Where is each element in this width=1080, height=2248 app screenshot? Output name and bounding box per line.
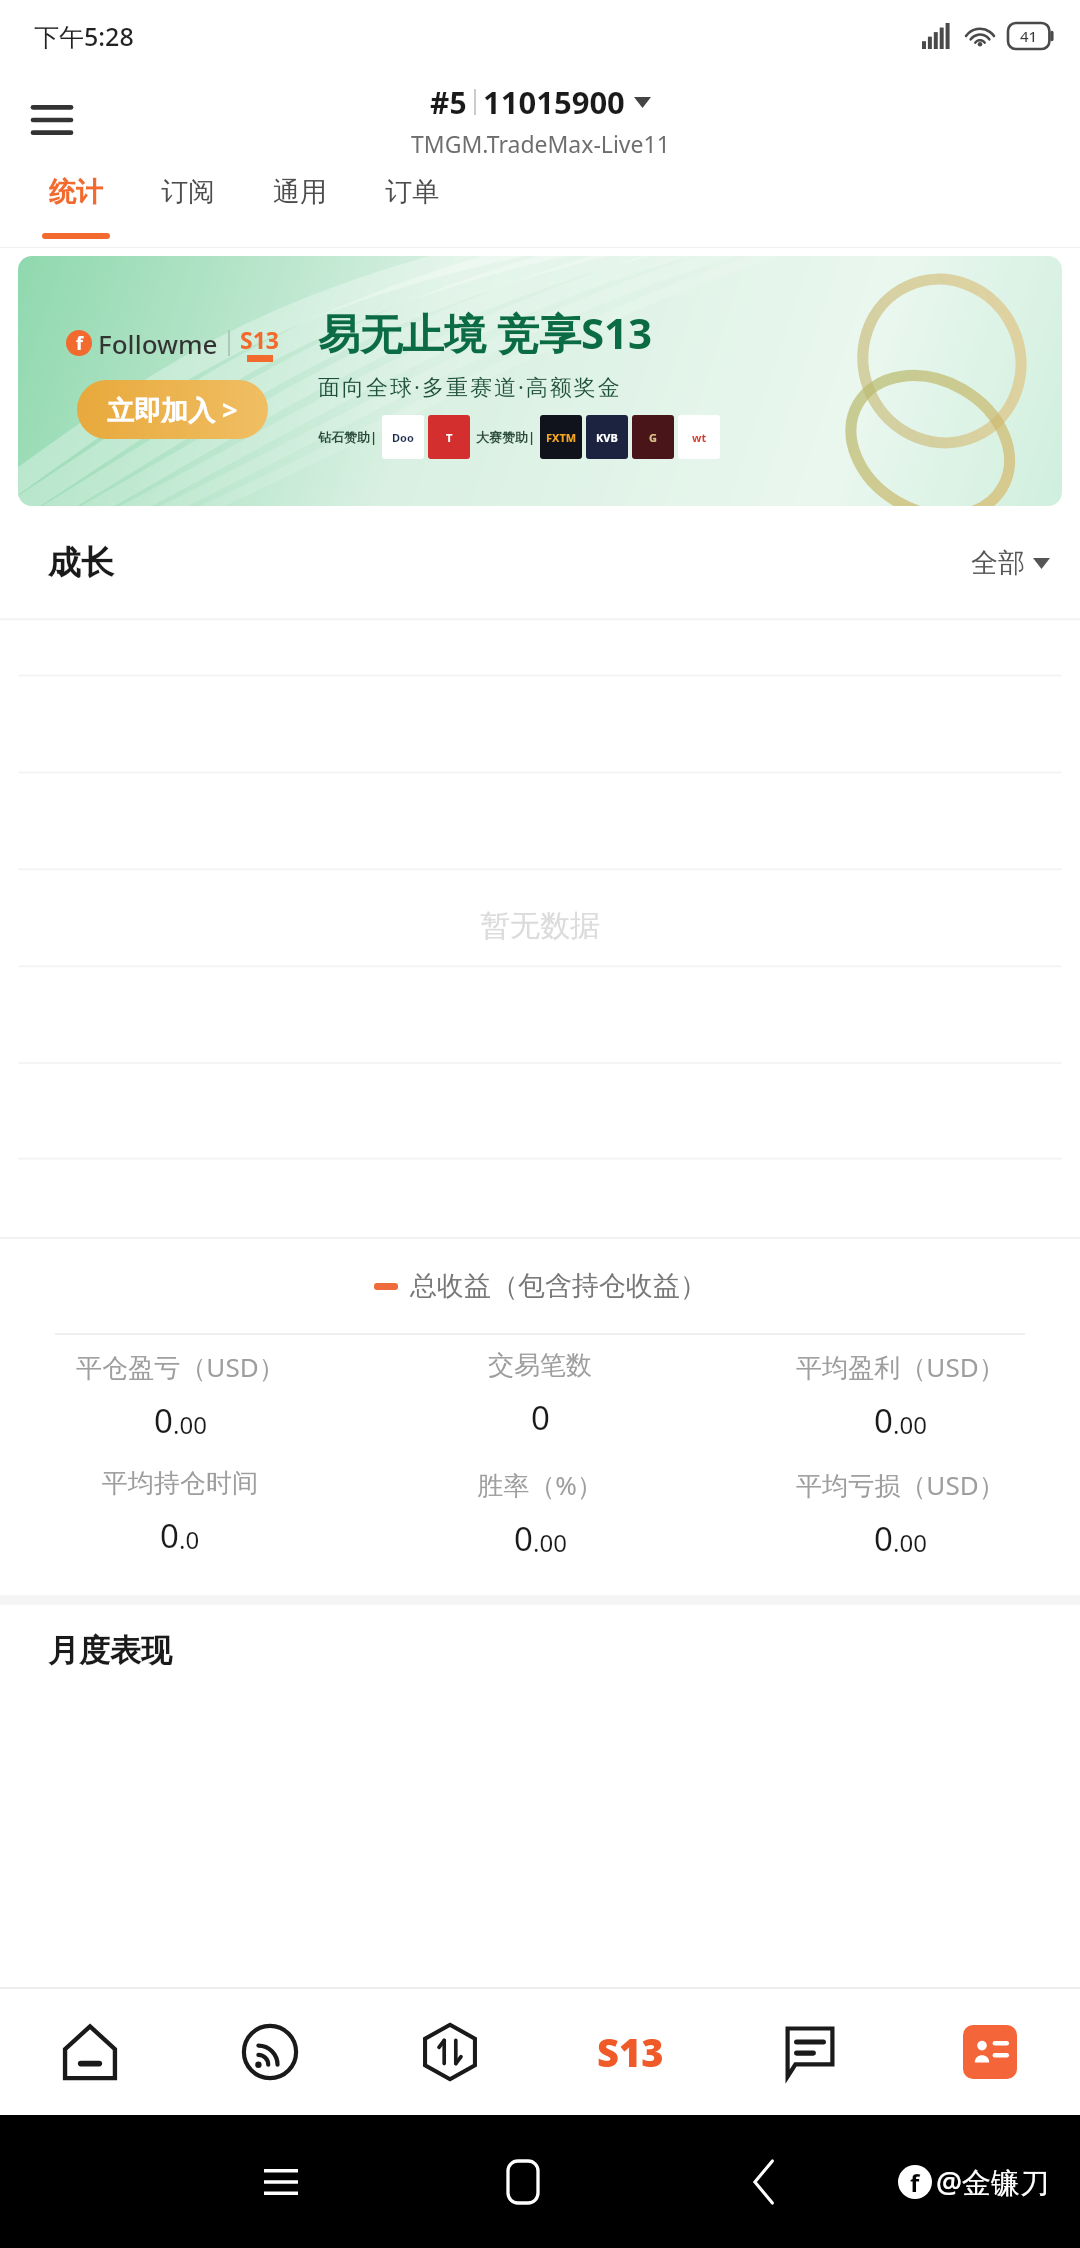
staticText: wt — [692, 430, 707, 445]
staticText: 面向全球·多重赛道·高额奖金 — [318, 371, 622, 401]
staticText: 0 — [160, 1513, 179, 1558]
button[interactable]: 全部 — [971, 546, 1050, 580]
staticText: 立即加入 > — [107, 391, 238, 428]
staticText: 订阅 — [161, 175, 215, 209]
staticText: 0 — [874, 1398, 893, 1443]
staticText: @金镰刀 — [936, 2162, 1050, 2202]
staticText: 易无止境 竞享S13 — [318, 304, 653, 361]
button[interactable]: Messages — [720, 1989, 900, 2115]
staticText: 交易笔数 — [488, 1349, 592, 1382]
staticText: 11015900 — [483, 81, 625, 123]
staticText: 平均盈利（USD） — [796, 1349, 1005, 1385]
button[interactable]: Menu — [20, 88, 84, 152]
staticText: Followme — [98, 326, 218, 361]
button[interactable]: Home — [0, 1989, 180, 2115]
staticText: 平仓盈亏（USD） — [76, 1349, 285, 1385]
staticText: 下午5:28 — [34, 19, 134, 53]
staticText: 大赛赞助| — [476, 428, 536, 446]
staticText: 月度表现 — [48, 1631, 172, 1670]
staticText: 成长 — [48, 542, 114, 584]
staticText: KVB — [596, 430, 618, 445]
staticText: .0 — [179, 1523, 200, 1556]
staticText: 0 — [531, 1395, 550, 1440]
staticText: 钻石赞助| — [318, 428, 378, 446]
button[interactable]: 订单 — [356, 167, 468, 247]
staticText: .00 — [893, 1526, 927, 1559]
staticText: #5 — [430, 82, 467, 123]
staticText: 平均持仓时间 — [102, 1467, 258, 1500]
staticText: 订单 — [385, 175, 439, 209]
staticText: 0 — [874, 1516, 893, 1561]
button[interactable]: S13 Contest — [540, 1989, 720, 2115]
staticText: 平均亏损（USD） — [796, 1467, 1005, 1503]
staticText: 总收益（包含持仓收益） — [410, 1269, 707, 1303]
button[interactable]: 统计 — [20, 167, 132, 247]
staticText: .00 — [893, 1408, 927, 1441]
staticText: 胜率（%） — [477, 1467, 603, 1503]
button[interactable]: Trade — [360, 1989, 540, 2115]
staticText: f — [76, 331, 83, 356]
staticText: 通用 — [273, 175, 327, 209]
staticText: 0 — [514, 1516, 533, 1561]
staticText: 暂无数据 — [480, 907, 600, 945]
staticText: 全部 — [971, 546, 1025, 580]
staticText: 41 — [1020, 26, 1038, 46]
button[interactable]: 订阅 — [132, 167, 244, 247]
staticText: 0 — [154, 1398, 173, 1443]
staticText: FXTM — [546, 430, 577, 445]
staticText: T — [446, 430, 453, 445]
button[interactable]: 立即加入 > — [107, 391, 238, 428]
staticText: f — [910, 2166, 920, 2199]
staticText: S13 — [240, 324, 279, 355]
staticText: Doo — [392, 430, 414, 445]
button[interactable]: Profile — [900, 1989, 1080, 2115]
staticText: TMGM.TradeMax-Live11 — [411, 128, 670, 159]
button[interactable]: Broadcast — [180, 1989, 360, 2115]
staticText: .00 — [533, 1526, 567, 1559]
button[interactable]: f — [18, 256, 1062, 506]
button[interactable]: 通用 — [244, 167, 356, 247]
staticText: 统计 — [49, 175, 103, 209]
staticText: S13 — [597, 2026, 664, 2078]
staticText: .00 — [173, 1408, 207, 1441]
staticText: G — [649, 430, 657, 445]
